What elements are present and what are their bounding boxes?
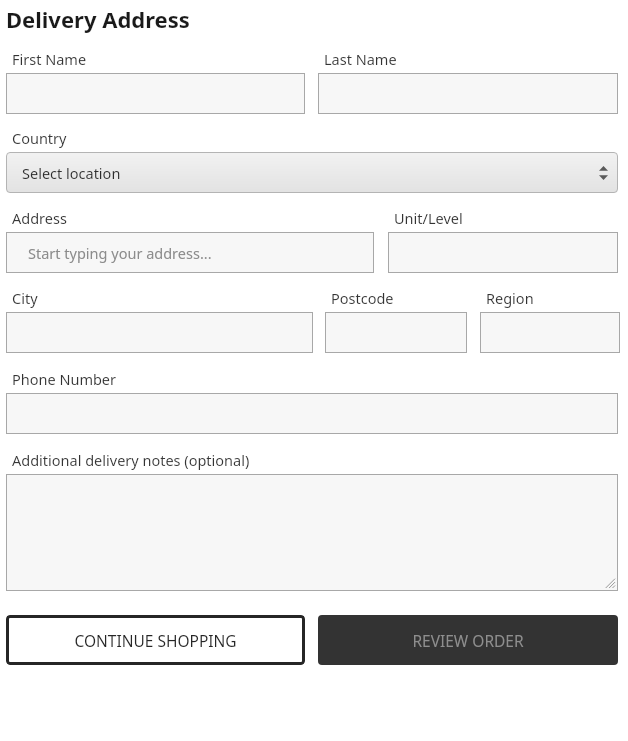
staticText: City [12,288,38,308]
button[interactable] [6,474,618,591]
staticText: First Name [12,49,87,69]
button[interactable] [388,232,618,273]
button[interactable]: CONTINUE SHOPPING [6,615,305,665]
staticText: Select location [22,163,121,183]
button[interactable] [480,312,620,353]
button[interactable] [325,312,467,353]
button[interactable] [6,393,618,434]
staticText: Address [12,208,67,228]
staticText: REVIEW ORDER [412,630,524,651]
button[interactable] [318,73,618,114]
button[interactable]: REVIEW ORDER [318,615,618,665]
button[interactable] [6,73,305,114]
button[interactable]: Start typing your address... [6,232,374,273]
button[interactable]: Select location [6,152,618,193]
staticText: Start typing your address... [28,243,212,263]
staticText: Unit/Level [394,208,463,228]
staticText: Delivery Address [6,4,190,34]
staticText: Phone Number [12,369,117,389]
staticText: CONTINUE SHOPPING [74,630,237,651]
staticText: Additional delivery notes (optional) [12,450,250,470]
staticText: Last Name [324,49,397,69]
staticText: Region [486,288,534,308]
other: Select country [599,166,608,180]
staticText: Country [12,128,67,148]
staticText: Postcode [331,288,394,308]
button[interactable] [6,312,313,353]
